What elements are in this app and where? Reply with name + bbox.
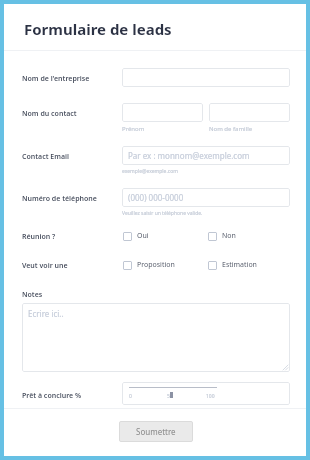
staticText: Numéro de téléphone: [22, 194, 97, 204]
staticText: Proposition: [137, 260, 175, 270]
button[interactable]: Oui: [123, 230, 149, 242]
staticText: Formulaire de leads: [24, 19, 172, 39]
staticText: Soumettre: [136, 426, 176, 437]
button[interactable]: Prénom: [122, 103, 203, 122]
staticText: 100: [206, 393, 215, 400]
staticText: exemple@exemple.com: [122, 168, 178, 175]
staticText: Estimation: [222, 260, 257, 270]
button[interactable]: Numéro de téléphone: [122, 188, 290, 207]
staticText: Non: [222, 231, 236, 241]
button[interactable]: Nom de famille: [209, 103, 290, 122]
button[interactable]: Prêt à conclure pourcentage: [122, 382, 290, 405]
staticText: Contact Email: [22, 152, 70, 162]
staticText: Nom de l'entreprise: [22, 74, 90, 84]
staticText: Veuillez saisir un téléphone valide.: [122, 210, 203, 217]
staticText: Réunion ?: [22, 232, 56, 242]
button[interactable]: Soumettre: [119, 421, 193, 442]
staticText: Ecrire ici..: [28, 308, 64, 319]
button[interactable]: Notes: [22, 303, 290, 372]
staticText: 50: [167, 393, 173, 400]
staticText: Oui: [137, 231, 149, 241]
staticText: Par ex : monnom@exemple.com: [128, 150, 250, 161]
button[interactable]: Estimation: [208, 259, 257, 271]
staticText: Nom du contact: [22, 109, 77, 119]
staticText: Notes: [22, 290, 43, 300]
button[interactable]: Contact Email: [122, 146, 290, 165]
button[interactable]: Non: [208, 230, 236, 242]
button[interactable]: Proposition: [123, 259, 175, 271]
staticText: Prêt à conclure %: [22, 391, 82, 401]
button[interactable]: Nom de l'entreprise: [122, 68, 290, 87]
staticText: Veut voir une: [22, 261, 68, 271]
staticText: (000) 000-0000: [128, 192, 184, 203]
staticText: Nom de famille: [209, 125, 253, 133]
staticText: 0: [129, 393, 132, 400]
staticText: Prénom: [122, 125, 145, 133]
